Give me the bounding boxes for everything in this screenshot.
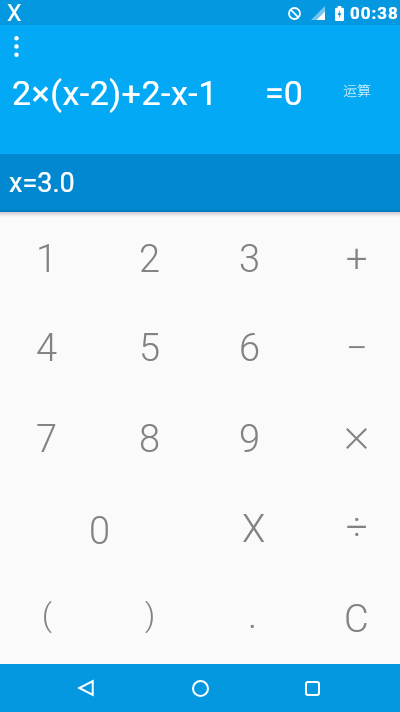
staticText: 9	[239, 417, 261, 462]
button[interactable]: 4	[0, 303, 100, 394]
button[interactable]: 0	[0, 484, 200, 574]
staticText: C	[344, 597, 369, 642]
button[interactable]: 3	[200, 212, 300, 303]
button[interactable]: 6	[200, 303, 300, 394]
button[interactable]: −	[300, 303, 400, 394]
staticText: X	[7, 0, 22, 25]
button[interactable]: X	[200, 484, 300, 574]
button[interactable]: 9	[200, 394, 300, 484]
button[interactable]: ÷	[300, 484, 400, 574]
staticText: x=3.0	[9, 167, 75, 199]
staticText: =0	[265, 73, 303, 113]
staticText: 运算	[343, 80, 371, 100]
staticText: 00:38	[350, 3, 399, 23]
button[interactable]	[288, 664, 336, 712]
staticText: 2×(x-2)+2-x-1	[12, 73, 218, 113]
staticText: 1	[36, 237, 58, 282]
staticText: )	[145, 597, 156, 633]
staticText: 4	[36, 326, 58, 371]
button[interactable]: (	[0, 574, 100, 664]
button[interactable]: 2	[100, 212, 200, 303]
button[interactable]	[176, 664, 224, 712]
button[interactable]: 1	[0, 212, 100, 303]
staticText: 8	[139, 417, 161, 462]
staticText: 2	[139, 237, 161, 282]
staticText: 6	[239, 326, 261, 371]
staticText: 3	[239, 237, 261, 282]
button[interactable]: 5	[100, 303, 200, 394]
staticText: 5	[139, 326, 161, 371]
staticText: (	[42, 597, 52, 633]
button[interactable]: +	[300, 212, 400, 303]
staticText: ÷	[346, 505, 368, 550]
button[interactable]	[4, 27, 28, 65]
staticText: +	[346, 237, 368, 282]
button[interactable]: 运算	[326, 72, 388, 108]
button[interactable]	[300, 394, 400, 484]
staticText: .	[248, 593, 258, 638]
button[interactable]: 8	[100, 394, 200, 484]
button[interactable]: )	[100, 574, 200, 664]
staticText: 0	[89, 509, 111, 554]
staticText: X	[242, 507, 266, 552]
button[interactable]: 7	[0, 394, 100, 484]
staticText: 7	[36, 417, 58, 462]
staticText: −	[346, 326, 368, 371]
button[interactable]	[62, 664, 110, 712]
button[interactable]: .	[200, 574, 300, 664]
button[interactable]: C	[300, 574, 400, 664]
